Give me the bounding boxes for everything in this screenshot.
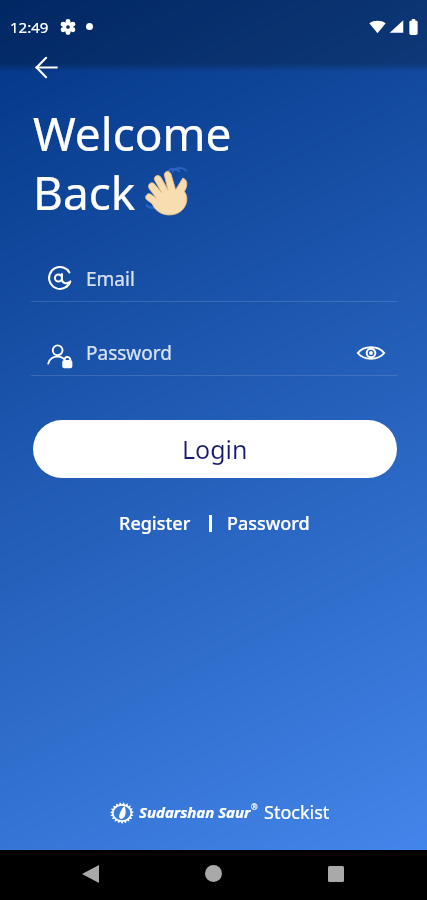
staticText: Password — [86, 340, 172, 366]
button[interactable]: Back — [23, 44, 69, 90]
staticText: Stockist — [264, 800, 330, 825]
button[interactable]: Home — [201, 861, 226, 886]
button[interactable]: Recents — [324, 862, 348, 886]
staticText: ® — [251, 801, 258, 812]
staticText: Back — [33, 161, 136, 224]
button[interactable]: Password — [212, 505, 318, 542]
button[interactable]: Show password — [354, 336, 388, 370]
staticText: Password — [227, 511, 310, 536]
staticText: 12:49 — [10, 17, 49, 37]
staticText: Sudarshan Saur — [139, 802, 251, 822]
button[interactable]: Login — [33, 420, 397, 478]
button[interactable]: Register — [101, 505, 209, 542]
staticText: Register — [119, 511, 191, 536]
staticText: Email — [86, 266, 135, 292]
staticText: Login — [182, 432, 248, 466]
staticText: Welcome — [33, 102, 232, 165]
button[interactable]: Back — [78, 862, 102, 886]
